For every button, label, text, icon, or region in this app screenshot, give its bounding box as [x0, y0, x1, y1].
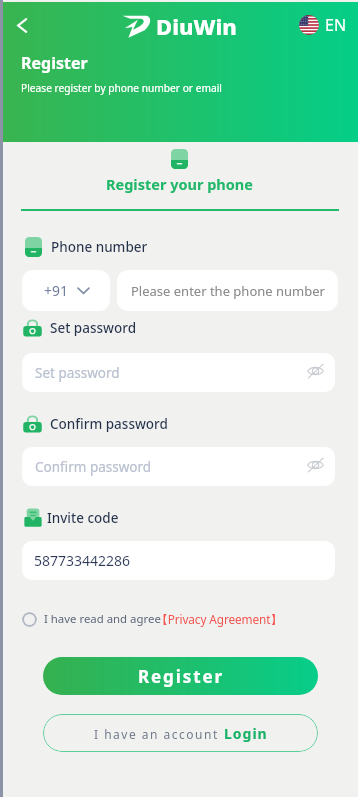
button[interactable]: Show password — [304, 360, 326, 382]
staticText: DiuWin — [156, 11, 237, 41]
button[interactable]: Set password — [22, 353, 335, 392]
staticText: Confirm password — [50, 415, 168, 433]
staticText: Register — [138, 665, 224, 688]
button[interactable]: Register your phone — [0, 149, 358, 194]
staticText: EN — [325, 14, 347, 36]
staticText: Set password — [50, 319, 137, 337]
button[interactable]: I have an account — [43, 714, 318, 752]
button[interactable]: Language English — [299, 14, 347, 36]
staticText: I have an account — [94, 726, 219, 742]
button[interactable]: I have read and agree — [22, 611, 288, 627]
staticText: Please enter the phone number — [131, 282, 325, 300]
staticText: 【Privacy Agreement】 — [156, 611, 283, 627]
staticText: I have read and agree — [44, 611, 161, 627]
staticText: Please register by phone number or email — [21, 81, 222, 95]
staticText: 587733442286 — [34, 551, 131, 570]
button[interactable]: DiuWin — [122, 11, 237, 41]
staticText: +91 — [44, 281, 69, 300]
button[interactable]: +91 — [22, 270, 110, 311]
button[interactable]: Register — [43, 657, 318, 695]
staticText: Login — [224, 724, 268, 743]
staticText: Register your phone — [106, 174, 253, 194]
staticText: Phone number — [51, 238, 148, 256]
button[interactable]: Show password — [304, 454, 326, 476]
button[interactable]: 587733442286 — [22, 541, 335, 580]
button[interactable]: Back — [4, 7, 40, 43]
button[interactable]: Confirm password — [22, 447, 335, 486]
staticText: Invite code — [47, 509, 119, 527]
staticText: Confirm password — [35, 458, 152, 476]
button[interactable]: Please enter the phone number — [117, 270, 338, 311]
staticText: Register — [21, 52, 88, 74]
staticText: Set password — [35, 364, 120, 382]
